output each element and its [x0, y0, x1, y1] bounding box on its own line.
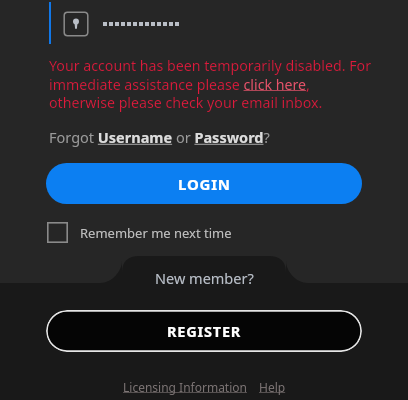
staticText: Licensing Information: [123, 379, 247, 395]
other: Password: [63, 11, 89, 37]
button[interactable]: LOGIN: [46, 163, 362, 204]
staticText: Forgot Username or Password?: [49, 127, 270, 147]
staticText: REGISTER: [167, 321, 242, 341]
button[interactable]: Forgot Username or Password?: [49, 127, 270, 147]
staticText: New member?: [155, 268, 254, 288]
button[interactable]: Licensing Information: [123, 379, 247, 395]
staticText: LOGIN: [178, 174, 231, 194]
button[interactable]: Password: [0, 0, 408, 48]
staticText: Remember me next time: [80, 224, 232, 242]
staticText: Your account has been temporarily disabl…: [49, 56, 372, 112]
button[interactable]: Remember me next time: [47, 222, 232, 243]
button[interactable]: REGISTER: [46, 310, 362, 352]
button[interactable]: Help: [259, 379, 286, 395]
button[interactable]: New member?: [155, 268, 254, 288]
staticText: Help: [259, 379, 286, 395]
